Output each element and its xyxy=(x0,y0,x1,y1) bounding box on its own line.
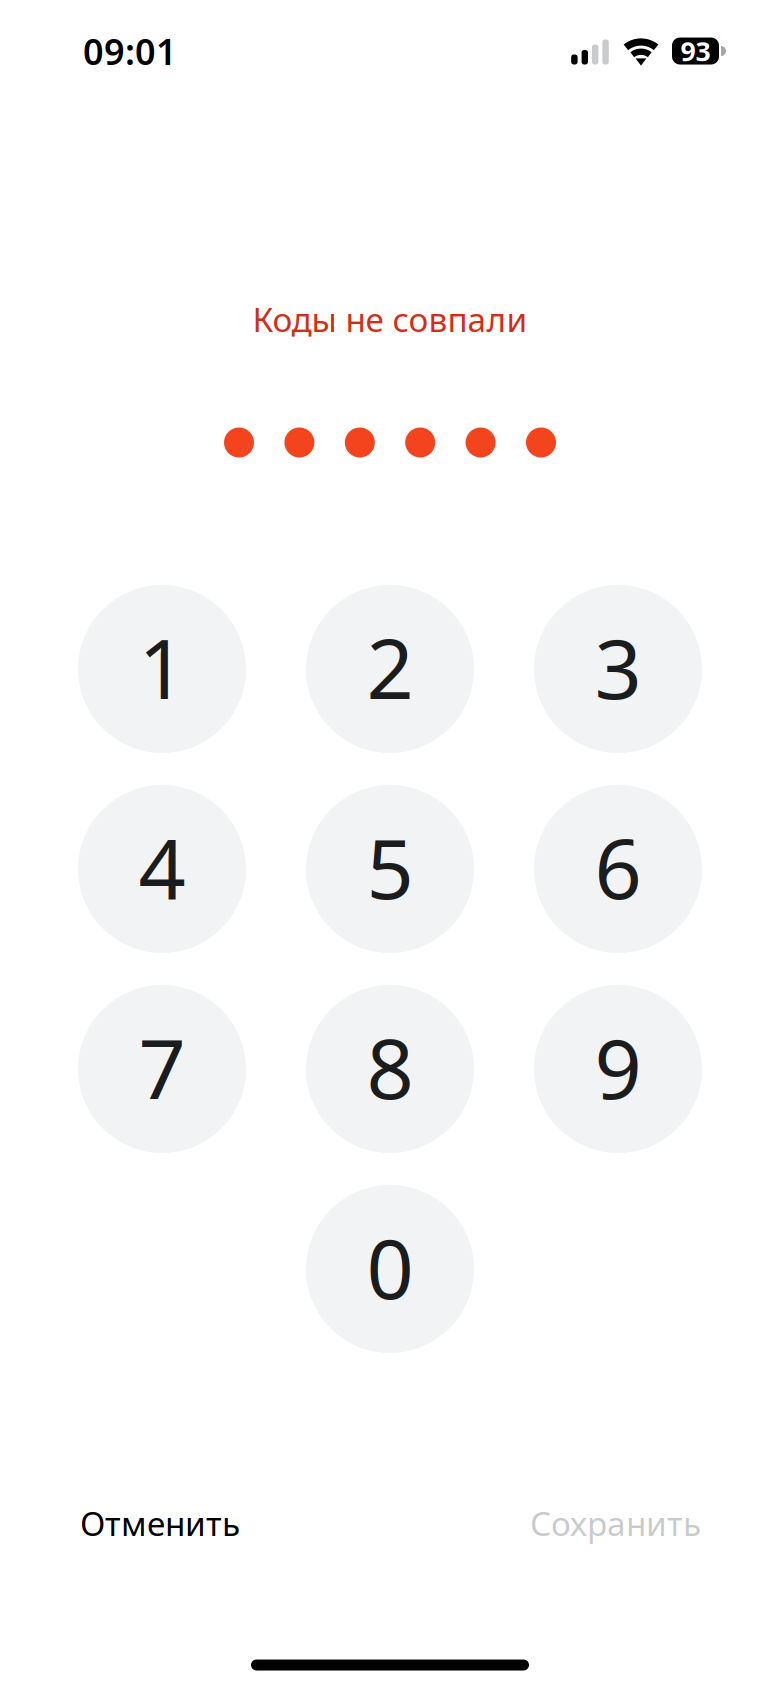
staticText: 5 xyxy=(366,812,413,922)
staticText: 7 xyxy=(138,1012,185,1122)
button[interactable]: 4 xyxy=(78,785,246,953)
button[interactable]: Отменить xyxy=(80,1491,340,1555)
staticText: 6 xyxy=(594,812,641,922)
staticText: 1 xyxy=(138,612,185,722)
button[interactable]: 7 xyxy=(78,985,246,1153)
staticText: Сохранить xyxy=(530,1501,701,1545)
button[interactable]: 9 xyxy=(534,985,702,1153)
staticText: 93 xyxy=(680,33,710,69)
staticText: 4 xyxy=(138,812,185,922)
staticText: Отменить xyxy=(80,1501,240,1545)
button[interactable]: 0 xyxy=(306,1185,474,1353)
staticText: 2 xyxy=(366,612,413,722)
staticText: Коды не совпали xyxy=(252,297,527,341)
staticText: 09:01 xyxy=(83,27,177,75)
button[interactable]: Сохранить xyxy=(441,1491,701,1555)
button[interactable]: 6 xyxy=(534,785,702,953)
button[interactable]: 2 xyxy=(306,585,474,753)
staticText: 9 xyxy=(594,1012,641,1122)
staticText: 0 xyxy=(366,1212,413,1322)
staticText: 3 xyxy=(594,612,641,722)
button[interactable]: 1 xyxy=(78,585,246,753)
button[interactable]: 8 xyxy=(306,985,474,1153)
staticText: 8 xyxy=(366,1012,413,1122)
button[interactable]: 5 xyxy=(306,785,474,953)
button[interactable]: 3 xyxy=(534,585,702,753)
